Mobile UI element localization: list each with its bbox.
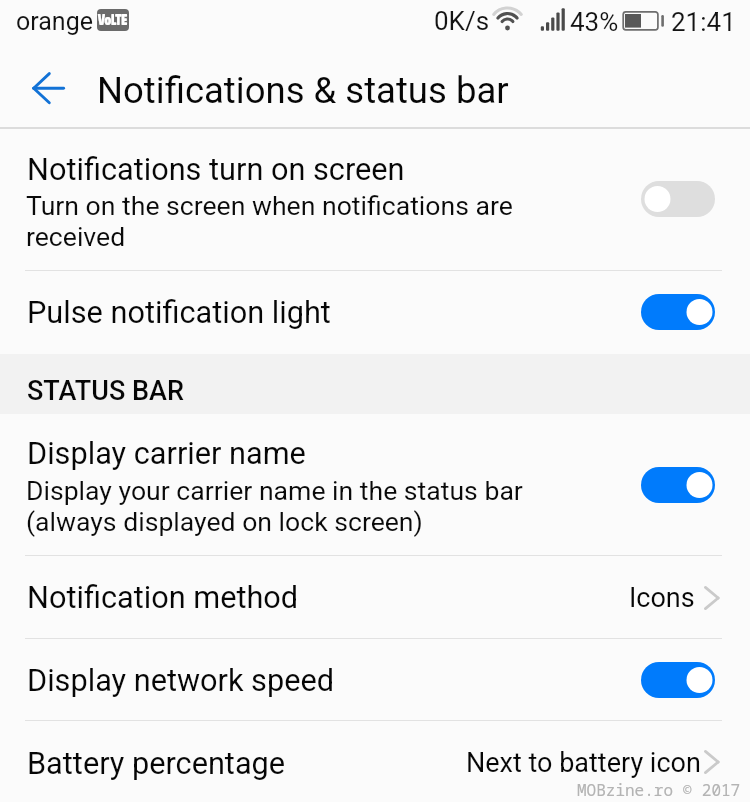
staticText: Notifications turn on screen xyxy=(27,152,405,188)
staticText: MOBzine.ro © 2017 xyxy=(577,779,741,801)
staticText: Icons xyxy=(629,582,695,614)
button[interactable]: Display carrier name xyxy=(0,414,750,555)
staticText: STATUS BAR xyxy=(27,375,184,407)
button[interactable]: Back xyxy=(12,59,80,117)
button[interactable]: Notifications turn on screen xyxy=(0,129,750,270)
staticText: Next to battery icon xyxy=(466,747,701,779)
staticText: Pulse notification light xyxy=(27,295,331,331)
other: Battery 43 percent xyxy=(621,10,667,33)
button[interactable]: Battery percentage xyxy=(0,721,750,802)
button[interactable]: Open xyxy=(690,740,736,786)
other: Wi-Fi xyxy=(492,6,524,32)
staticText: Notification method xyxy=(27,580,299,616)
button[interactable]: Switch off xyxy=(641,181,715,217)
staticText: Display network speed xyxy=(27,663,335,699)
staticText: 43% xyxy=(570,7,619,37)
staticText: VoLTE xyxy=(98,12,128,28)
button[interactable]: Switch on xyxy=(641,662,715,698)
staticText: orange xyxy=(16,7,93,36)
button[interactable]: Switch on xyxy=(641,467,715,503)
button[interactable]: Notification method xyxy=(0,556,750,638)
button[interactable]: Display network speed xyxy=(0,639,750,720)
staticText: Turn on the screen when notifications ar… xyxy=(26,190,513,252)
button[interactable]: Open xyxy=(690,576,736,622)
staticText: 21:41 xyxy=(671,7,736,37)
staticText: Notifications & status bar xyxy=(97,69,509,112)
button[interactable]: Switch on xyxy=(641,294,715,330)
button[interactable]: Pulse notification light xyxy=(0,271,750,354)
staticText: 0K/s xyxy=(434,6,490,36)
staticText: Battery percentage xyxy=(27,746,286,782)
other: Mobile signal xyxy=(540,6,568,34)
staticText: Display your carrier name in the status … xyxy=(26,475,523,537)
staticText: Display carrier name xyxy=(27,436,306,472)
